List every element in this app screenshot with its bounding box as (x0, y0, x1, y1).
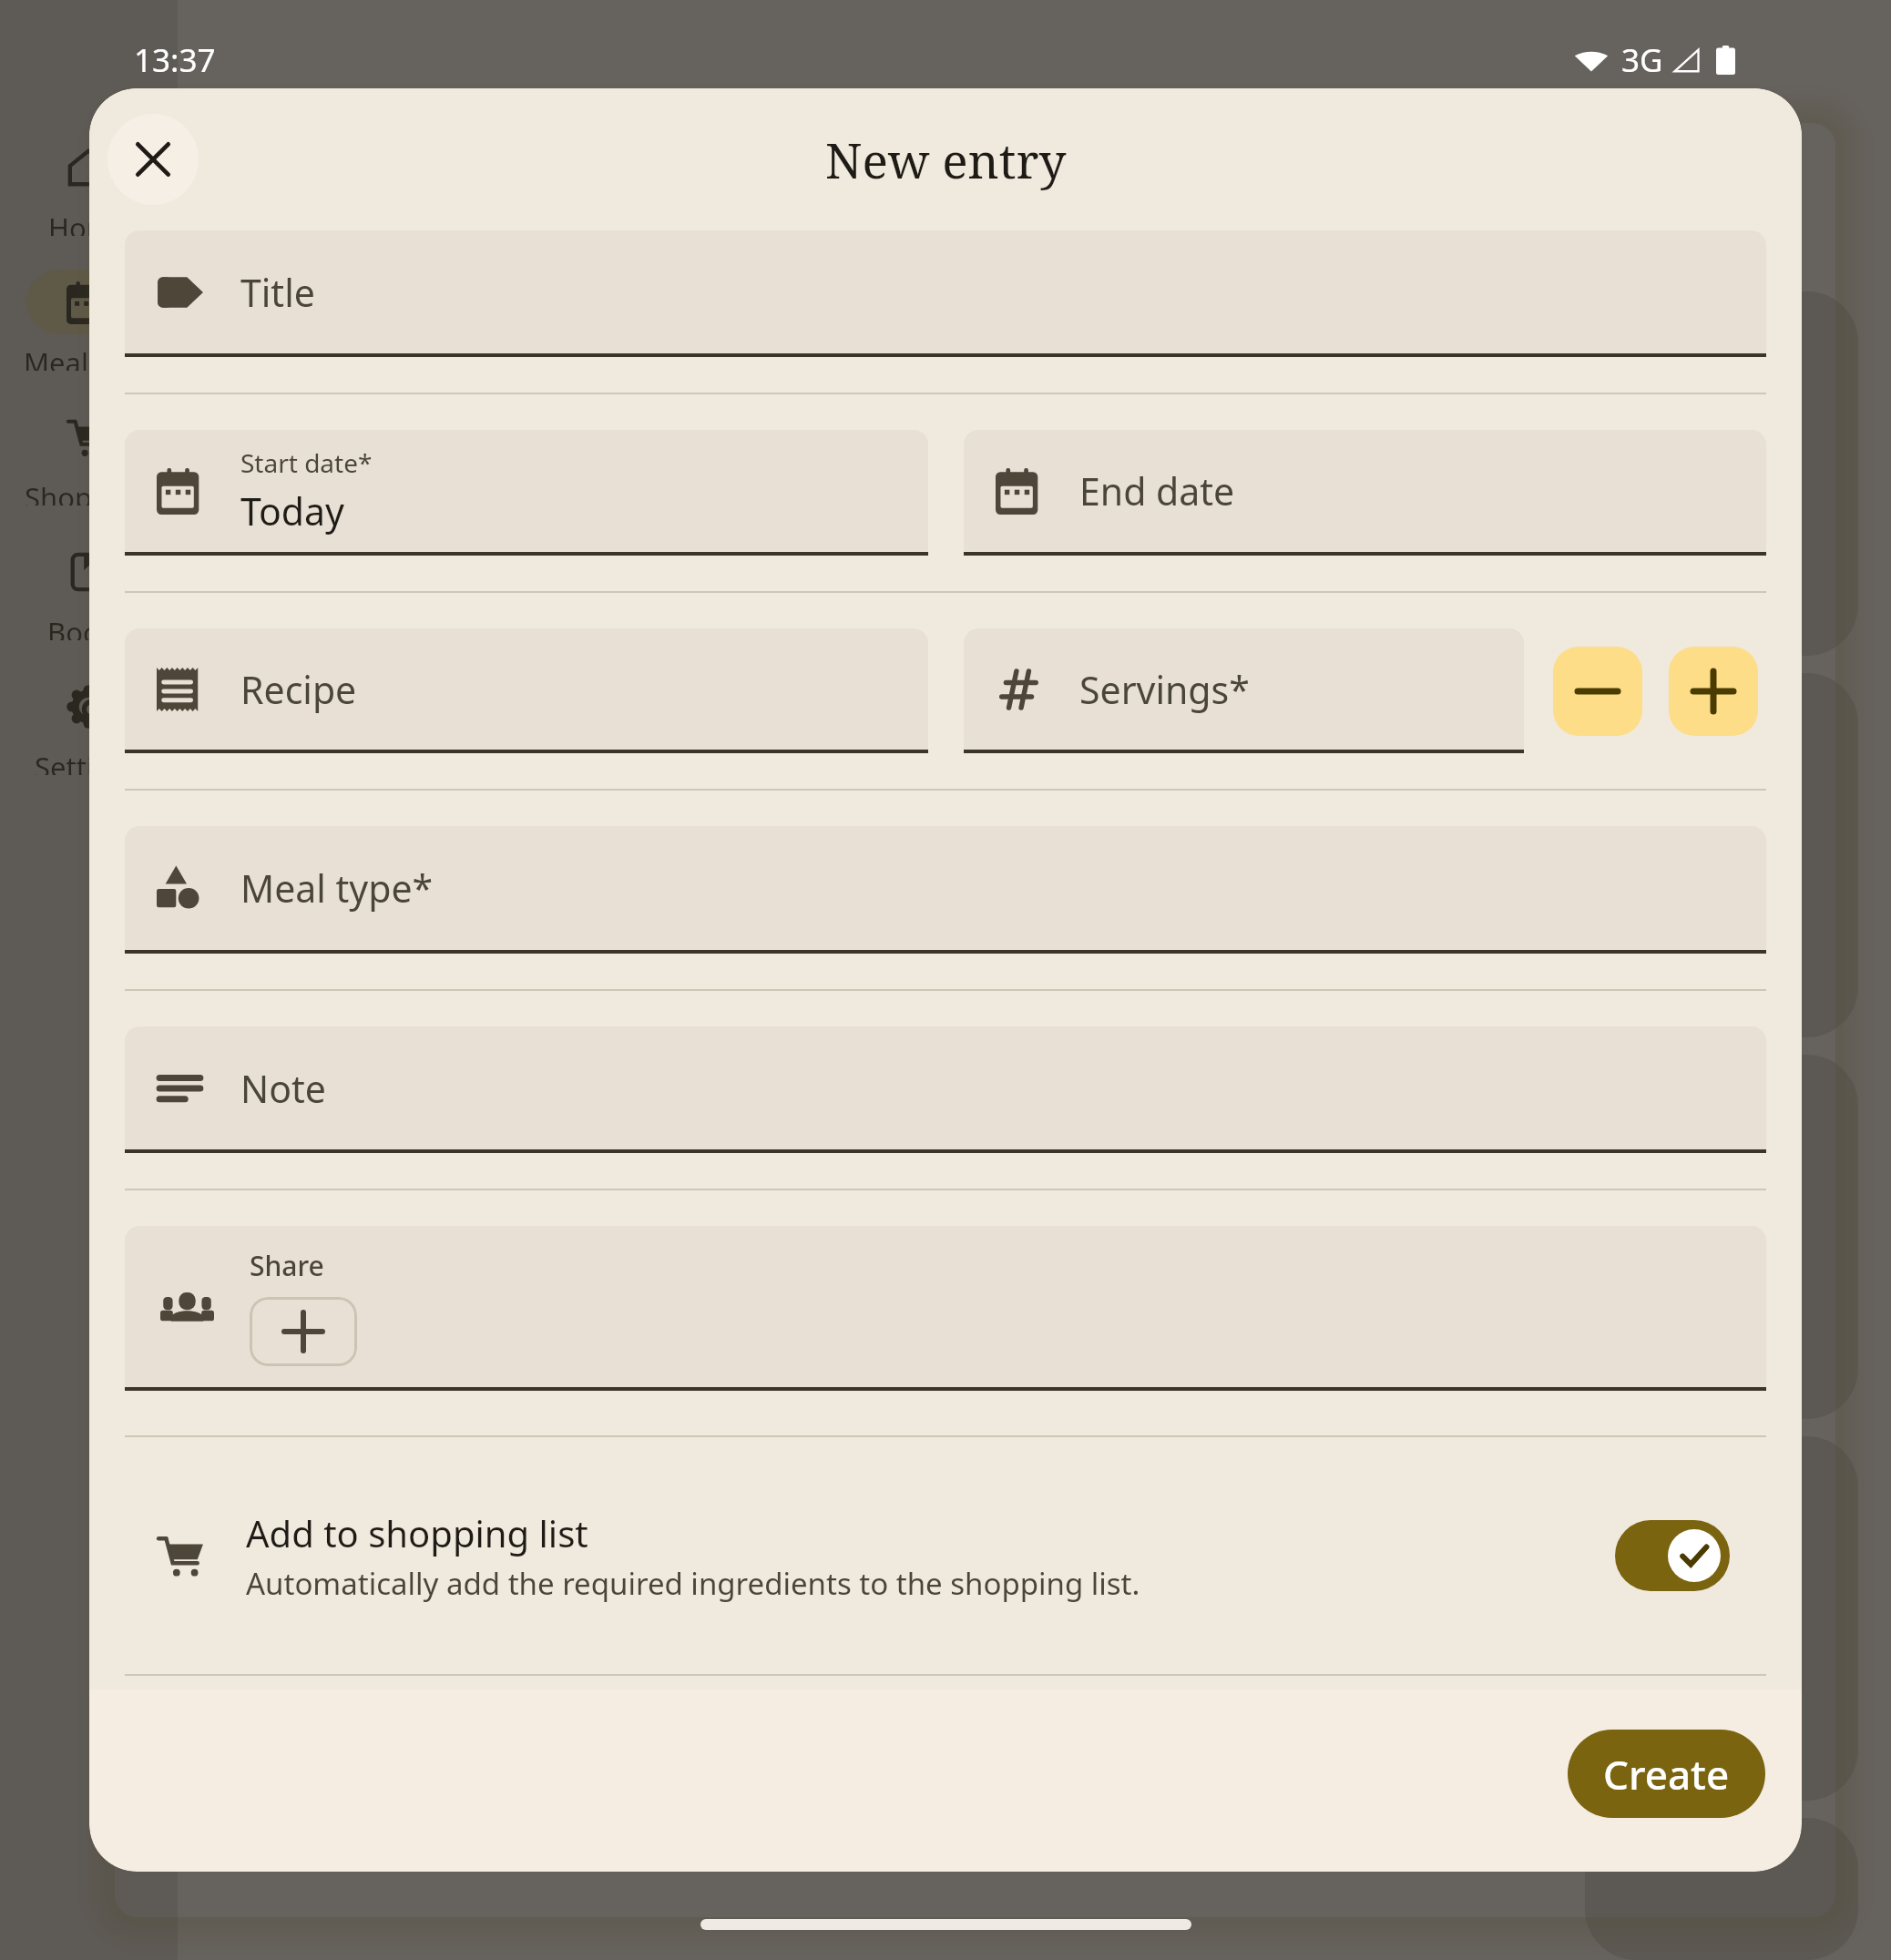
staticText: Recipe (240, 664, 357, 715)
button[interactable]: Increase servings (1669, 647, 1758, 736)
button[interactable]: Meal type* (125, 826, 1766, 950)
staticText: Add to shopping list (246, 1508, 588, 1557)
button[interactable]: Add person (250, 1297, 357, 1366)
staticText: 13:37 (134, 38, 216, 82)
button[interactable]: Close (107, 114, 199, 205)
button[interactable]: Meal plan (0, 236, 177, 371)
button[interactable]: Home (0, 101, 177, 236)
staticText: Servings* (1079, 664, 1250, 715)
button[interactable]: Create (1568, 1730, 1765, 1818)
button[interactable]: Toggle add to shopping list (1615, 1520, 1730, 1591)
staticText: End date (1079, 465, 1235, 516)
staticText: Shopping (25, 478, 152, 505)
button[interactable]: Books (0, 505, 177, 640)
staticText: Home (48, 209, 129, 236)
button[interactable]: End date (964, 430, 1766, 552)
staticText: New entry (825, 127, 1067, 192)
staticText: Meal plan (24, 343, 154, 371)
staticText: Start date* (240, 445, 373, 480)
button[interactable]: Note (125, 1026, 1766, 1149)
button[interactable]: Share (125, 1226, 1766, 1387)
staticText: Settings (35, 748, 142, 775)
button[interactable]: Servings* (964, 628, 1524, 750)
staticText: 3G (1621, 38, 1663, 82)
button[interactable]: Recipe (125, 628, 928, 750)
staticText: Create (1603, 1747, 1730, 1802)
staticText: Share (250, 1247, 324, 1284)
staticText: Today (240, 485, 344, 536)
staticText: Meal type* (240, 863, 434, 914)
button[interactable]: Add to shopping list (125, 1437, 1766, 1674)
staticText: Books (47, 613, 129, 640)
staticText: Note (240, 1063, 326, 1114)
button[interactable]: Title (125, 230, 1766, 353)
button[interactable]: Shopping (0, 371, 177, 505)
button[interactable]: Decrease servings (1553, 647, 1642, 736)
staticText: Title (240, 267, 315, 318)
button[interactable]: Start date* (125, 430, 928, 552)
staticText: Automatically add the required ingredien… (246, 1563, 1140, 1604)
button[interactable]: Settings (0, 640, 177, 775)
